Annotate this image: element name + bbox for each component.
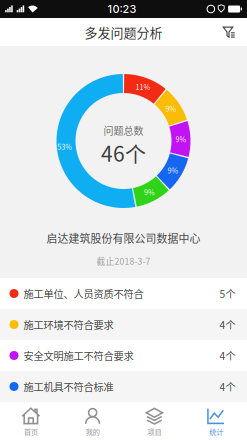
staticText: 截止2018-3-7 — [96, 255, 150, 267]
staticText: 统计 — [209, 426, 223, 437]
staticText: 5个 — [219, 286, 235, 301]
staticText: 施工机具不符合标准 — [23, 379, 113, 394]
staticText: 施工环境不符合要求 — [23, 317, 113, 332]
staticText: 施工单位、人员资质不符合 — [23, 286, 143, 301]
staticText: 11% — [135, 82, 150, 92]
button[interactable]: 施工机具不符合标准 — [0, 371, 247, 402]
staticText: 4个 — [219, 317, 235, 332]
button[interactable]: 筛选 — [211, 18, 247, 46]
staticText: 9% — [166, 103, 177, 114]
button[interactable]: 统计 — [185, 402, 247, 440]
button[interactable]: 施工单位、人员资质不符合 — [0, 278, 247, 309]
staticText: 9% — [144, 187, 155, 197]
staticText: 46个 — [101, 137, 146, 168]
staticText: 首页 — [24, 426, 38, 437]
staticText: 多发问题分析 — [84, 23, 162, 41]
staticText: 安全文明施工不符合要求 — [23, 348, 133, 363]
staticText: 4个 — [219, 379, 235, 394]
button[interactable]: 项目 — [123, 402, 185, 440]
staticText: 9% — [175, 134, 186, 144]
staticText: 53% — [57, 141, 72, 152]
button[interactable]: 安全文明施工不符合要求 — [0, 340, 247, 371]
staticText: 问题总数 — [103, 123, 143, 138]
staticText: 项目 — [147, 426, 161, 437]
staticText: 启达建筑股份有限公司数据中心 — [46, 230, 200, 246]
staticText: 9% — [167, 165, 178, 175]
staticText: 4个 — [219, 348, 235, 363]
button[interactable]: 我的 — [62, 402, 124, 440]
staticText: 我的 — [86, 426, 100, 437]
staticText: 10:23 — [107, 2, 136, 16]
button[interactable]: 首页 — [0, 402, 62, 440]
button[interactable]: 施工环境不符合要求 — [0, 309, 247, 340]
